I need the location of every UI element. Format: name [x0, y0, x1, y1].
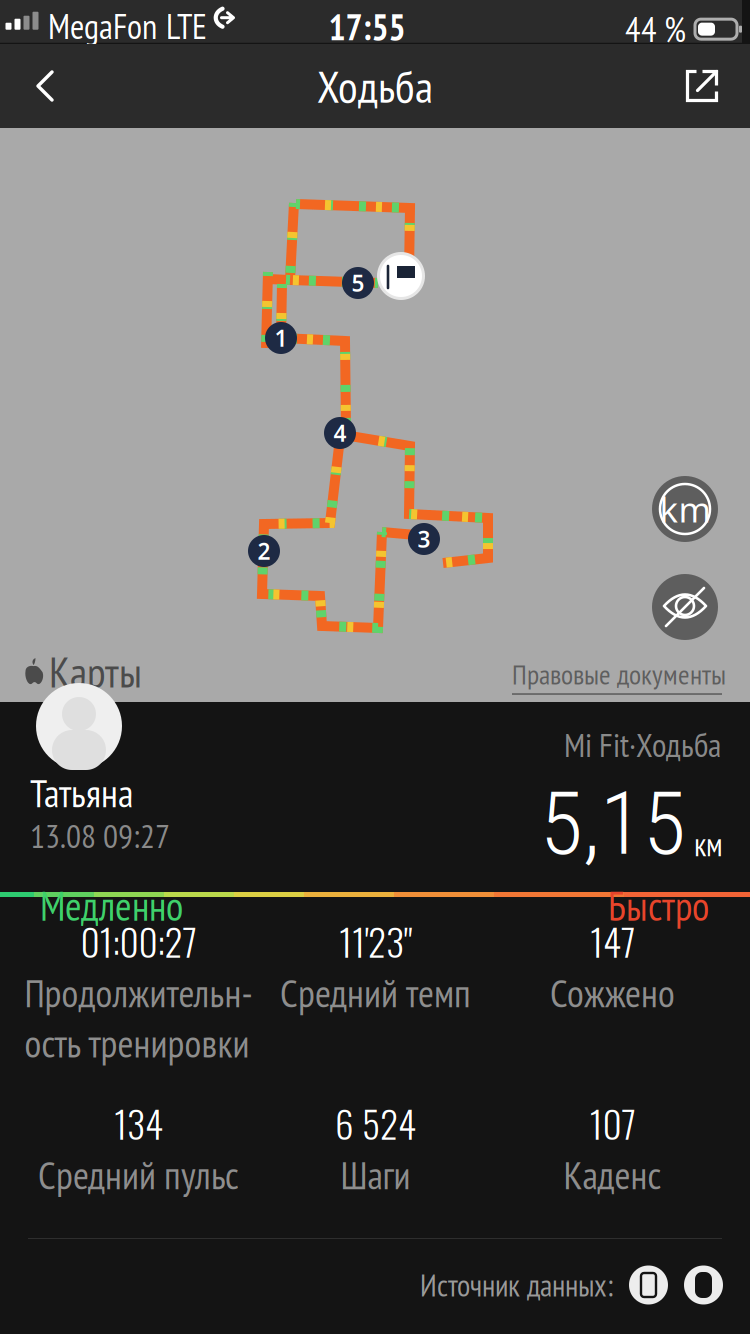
staticText: 134	[114, 1095, 163, 1151]
staticText: Правовые документы	[512, 656, 726, 692]
button[interactable]: Back	[6, 44, 84, 128]
staticText: Источник данных:	[420, 1265, 613, 1305]
staticText: 3	[417, 524, 430, 554]
staticText: Быстро	[608, 880, 709, 932]
staticText: 11'23"	[339, 913, 412, 969]
staticText: 5	[351, 268, 364, 298]
staticText: MegaFon	[48, 4, 157, 49]
staticText: Каденс	[563, 1150, 661, 1200]
button[interactable]: Hide route	[652, 574, 718, 640]
staticText: km	[659, 486, 710, 532]
staticText: 107	[589, 1095, 635, 1151]
staticText: 13.08 09:27	[30, 814, 170, 857]
staticText: 1	[274, 323, 287, 353]
button[interactable]: Share	[663, 44, 741, 128]
staticText: Медленно	[40, 880, 183, 932]
button[interactable]: Phone data source	[629, 1265, 668, 1304]
staticText: Средний пульс	[38, 1150, 239, 1200]
staticText: Ходьба	[317, 57, 433, 115]
staticText: LTE	[166, 4, 207, 49]
staticText: 4	[333, 418, 346, 448]
staticText: Карты	[49, 644, 142, 699]
staticText: 17:55	[328, 4, 405, 50]
staticText: 5,15	[540, 772, 686, 875]
staticText: 2	[257, 536, 270, 566]
staticText: 147	[590, 913, 635, 969]
staticText: 01:00:27	[80, 913, 196, 969]
staticText: Татьяна	[30, 768, 133, 818]
button[interactable]: Band data source	[684, 1265, 723, 1304]
staticText: Сожжено	[550, 968, 675, 1018]
staticText: 44 %	[625, 7, 686, 52]
button[interactable]: Units	[652, 476, 718, 542]
staticText: Продолжительность тренировки	[24, 968, 252, 1068]
staticText: Шаги	[340, 1150, 410, 1200]
staticText: км	[694, 824, 723, 865]
staticText: Mi Fit·Ходьба	[564, 723, 721, 766]
staticText: Средний темп	[280, 968, 471, 1018]
staticText: 6 524	[335, 1095, 416, 1151]
